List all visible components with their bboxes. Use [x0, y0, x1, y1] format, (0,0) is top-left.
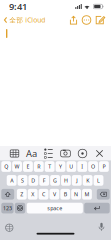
staticText: I	[81, 163, 83, 170]
staticText: 9:41	[9, 0, 27, 13]
staticText: Z	[20, 191, 23, 198]
button[interactable]	[1, 189, 14, 200]
staticText: B	[64, 191, 67, 198]
button[interactable]	[15, 203, 25, 213]
button[interactable]: B	[60, 189, 70, 200]
staticText: V	[53, 191, 56, 198]
button[interactable]: A	[7, 175, 16, 186]
button[interactable]: U	[66, 161, 76, 172]
staticText: J	[76, 177, 77, 184]
button[interactable]: W	[12, 161, 22, 172]
button[interactable]: O	[88, 161, 98, 172]
button[interactable]: Aa	[23, 146, 40, 161]
button[interactable]: J	[72, 175, 82, 186]
button[interactable]: Y	[56, 161, 65, 172]
staticText: K	[86, 177, 89, 184]
button[interactable]: space	[27, 203, 83, 213]
button[interactable]: P	[99, 161, 109, 172]
button[interactable]: H	[61, 175, 71, 186]
button[interactable]: Markup	[74, 146, 91, 161]
button[interactable]: V	[49, 189, 59, 200]
button[interactable]: C	[39, 189, 48, 200]
staticText: R	[37, 163, 40, 170]
button[interactable]: D	[28, 175, 38, 186]
staticText: Aa	[26, 147, 37, 160]
staticText: C	[42, 191, 45, 198]
staticText: O	[91, 163, 95, 170]
button[interactable]	[97, 189, 110, 200]
button[interactable]: S	[18, 175, 27, 186]
staticText: F	[43, 177, 46, 184]
button[interactable]: More	[80, 13, 93, 27]
button[interactable]: Q	[1, 161, 11, 172]
staticText: E	[26, 163, 29, 170]
button[interactable]: Table	[6, 146, 23, 161]
staticText: N	[74, 191, 78, 198]
staticText: T	[48, 163, 51, 170]
staticText: space	[47, 205, 62, 212]
button[interactable]: 全部 iCloud	[0, 13, 45, 27]
staticText: Y	[59, 163, 62, 170]
staticText: U	[69, 163, 73, 170]
button[interactable]: T	[45, 161, 54, 172]
button[interactable]: 123	[1, 203, 14, 213]
staticText: G	[53, 177, 57, 184]
button[interactable]: I	[77, 161, 87, 172]
button[interactable]: G	[50, 175, 60, 186]
button[interactable]	[84, 203, 110, 213]
staticText: Q	[4, 163, 8, 170]
button[interactable]: X	[28, 189, 38, 200]
staticText: S	[21, 177, 24, 184]
button[interactable]: R	[34, 161, 44, 172]
button[interactable]: Checklist	[40, 146, 57, 161]
button[interactable]: N	[71, 189, 81, 200]
button[interactable]: Share	[67, 13, 80, 27]
staticText: L	[97, 177, 100, 184]
button[interactable]: Camera	[57, 146, 74, 161]
button[interactable]: Dictation	[98, 222, 105, 231]
button[interactable]: Close keyboard	[91, 146, 108, 161]
button[interactable]: L	[94, 175, 103, 186]
staticText: A	[10, 177, 13, 184]
staticText: M	[84, 191, 89, 198]
button[interactable]: E	[23, 161, 33, 172]
staticText: W	[15, 163, 20, 170]
button[interactable]: K	[83, 175, 93, 186]
staticText: 123	[3, 205, 12, 212]
staticText: X	[31, 191, 34, 198]
staticText: D	[31, 177, 35, 184]
button[interactable]: Emoji	[5, 223, 13, 232]
button[interactable]: F	[39, 175, 49, 186]
button[interactable]: New Note	[93, 13, 108, 27]
button[interactable]: M	[82, 189, 92, 200]
staticText: H	[64, 177, 68, 184]
staticText: 全部 iCloud	[9, 16, 45, 24]
staticText: P	[102, 163, 105, 170]
button[interactable]: Z	[17, 189, 27, 200]
